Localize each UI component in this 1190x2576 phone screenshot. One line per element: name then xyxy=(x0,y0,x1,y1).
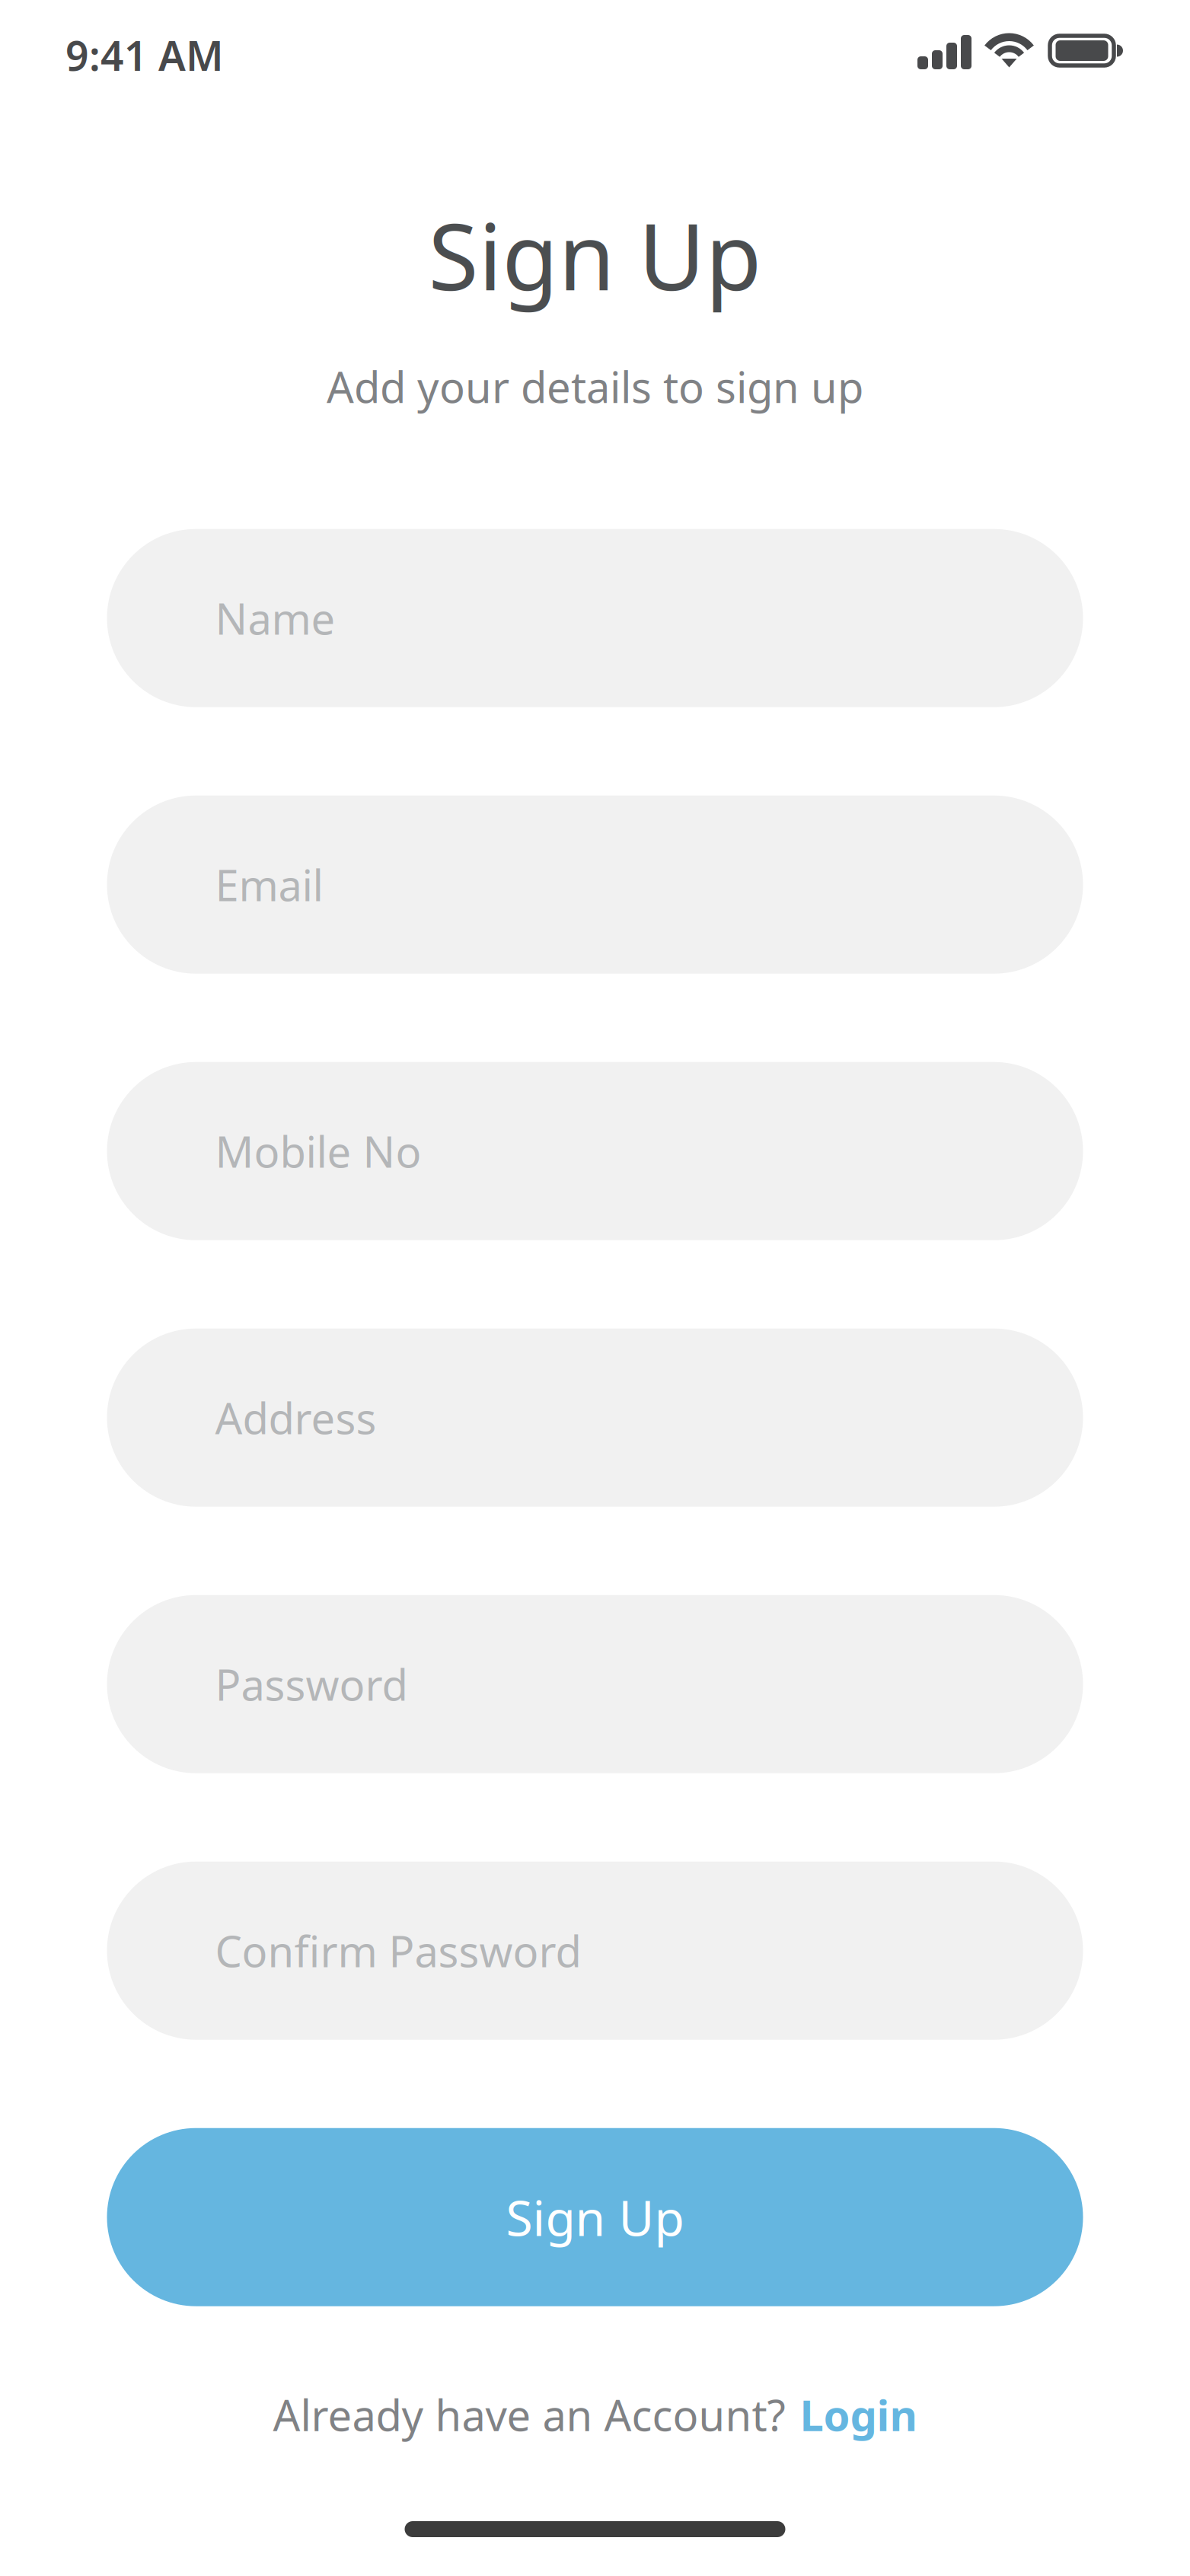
staticText: Already have an Account? xyxy=(273,2386,785,2443)
staticText: Email xyxy=(215,856,323,913)
staticText: Mobile No xyxy=(215,1123,421,1179)
button[interactable]: Name xyxy=(107,529,1083,707)
button[interactable]: Email xyxy=(107,795,1083,974)
staticText: Add your details to sign up xyxy=(327,358,863,415)
button[interactable]: Password xyxy=(107,1595,1083,1773)
button[interactable]: Confirm Password xyxy=(107,1862,1083,2040)
staticText: Name xyxy=(215,590,335,646)
staticText: Sign Up xyxy=(428,194,762,316)
button[interactable]: Address xyxy=(107,1329,1083,1507)
button[interactable]: Sign Up xyxy=(107,2128,1083,2306)
staticText: Address xyxy=(215,1389,376,1446)
staticText: Confirm Password xyxy=(215,1922,581,1979)
staticText: Password xyxy=(215,1656,408,1712)
staticText: Login xyxy=(800,2386,917,2443)
button[interactable]: Mobile No xyxy=(107,1062,1083,1240)
staticText: Sign Up xyxy=(506,2185,684,2249)
staticText: 9:41 AM xyxy=(65,28,224,82)
button[interactable]: Login xyxy=(800,2372,917,2457)
